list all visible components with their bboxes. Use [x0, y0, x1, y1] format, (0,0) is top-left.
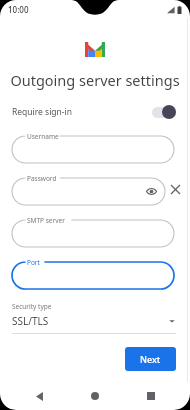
button[interactable]	[12, 130, 174, 163]
button[interactable]	[12, 256, 174, 289]
button[interactable]: Next	[125, 347, 176, 371]
staticText: Next	[140, 353, 161, 365]
staticText: 10:00	[8, 4, 29, 15]
button[interactable]: Require sign-in	[0, 105, 190, 119]
staticText: Security type	[12, 302, 52, 311]
button[interactable]: Clear password	[165, 179, 185, 199]
button[interactable]: Require sign-in	[152, 105, 176, 119]
button[interactable]: Recent apps	[140, 385, 162, 407]
button[interactable]	[12, 214, 174, 247]
staticText: SSL/TLS	[12, 314, 49, 328]
button[interactable]: Back	[28, 385, 50, 407]
button[interactable]	[12, 172, 165, 205]
staticText: SMTP server	[27, 216, 65, 225]
staticText: Outgoing server settings	[8, 70, 182, 90]
staticText: Port	[27, 258, 40, 267]
button[interactable]: Show password	[145, 185, 158, 198]
staticText: Password	[27, 174, 57, 183]
button[interactable]: Security type	[0, 302, 190, 334]
staticText: Username	[27, 132, 59, 141]
staticText: Require sign-in	[12, 106, 73, 118]
button[interactable]: Home	[84, 385, 106, 407]
